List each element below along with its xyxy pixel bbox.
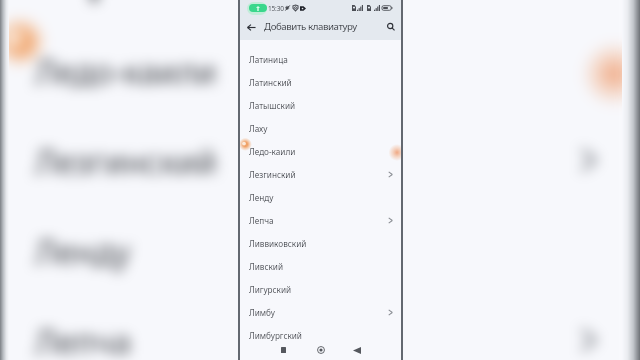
button[interactable]: Home	[312, 341, 330, 359]
staticText: Ленду	[249, 192, 274, 203]
staticText: Ленду	[35, 228, 133, 272]
staticText: Ледо-каили	[249, 146, 296, 157]
button[interactable]: Ледо-каили	[239, 140, 401, 163]
staticText: Ливвиковский	[249, 238, 307, 249]
button[interactable]: Лепча	[239, 209, 401, 232]
staticText: Лаху	[35, 0, 109, 1]
staticText: Латышский	[249, 100, 296, 111]
button[interactable]: Лимбургский	[239, 324, 401, 347]
button[interactable]: Recent apps	[274, 341, 292, 359]
button[interactable]: Back	[243, 19, 259, 35]
button[interactable]: Screen recording	[249, 4, 267, 12]
button[interactable]: Добавить клавиатуру	[264, 20, 357, 33]
staticText: Лаху	[249, 123, 268, 134]
staticText: Лезгинский	[249, 169, 296, 180]
button[interactable]: Лаху	[0, 0, 630, 25]
button[interactable]: Лигурский	[239, 278, 401, 301]
staticText: Лезгинский	[35, 138, 219, 182]
button[interactable]: Ливвиковский	[239, 232, 401, 255]
staticText: Лигурский	[249, 284, 292, 295]
button[interactable]: Лезгинский	[239, 163, 401, 186]
staticText: Лимбургский	[249, 330, 302, 341]
button[interactable]: Back	[348, 341, 366, 359]
button[interactable]: Лезгинский	[0, 115, 630, 205]
staticText: Лепча	[249, 215, 274, 226]
staticText: Латинский	[249, 77, 292, 88]
button[interactable]: Ледо-каили	[0, 25, 630, 115]
button[interactable]: Лимбу	[239, 301, 401, 324]
button[interactable]: Ливский	[239, 255, 401, 278]
staticText: Ливский	[249, 261, 283, 272]
button[interactable]: Search	[383, 19, 399, 35]
staticText: Ледо-каили	[35, 48, 219, 91]
button[interactable]: Латиница	[239, 48, 401, 71]
button[interactable]: Ленду	[0, 205, 630, 295]
staticText: Лепча	[35, 318, 133, 360]
button[interactable]: Лепча	[0, 295, 630, 360]
button[interactable]: Ленду	[239, 186, 401, 209]
staticText: Лимбу	[249, 307, 275, 318]
staticText: 15:30	[268, 4, 284, 13]
button[interactable]: Латинский	[239, 71, 401, 94]
button[interactable]: Лаху	[239, 117, 401, 140]
button[interactable]: Латышский	[239, 94, 401, 117]
staticText: Латиница	[249, 54, 288, 65]
